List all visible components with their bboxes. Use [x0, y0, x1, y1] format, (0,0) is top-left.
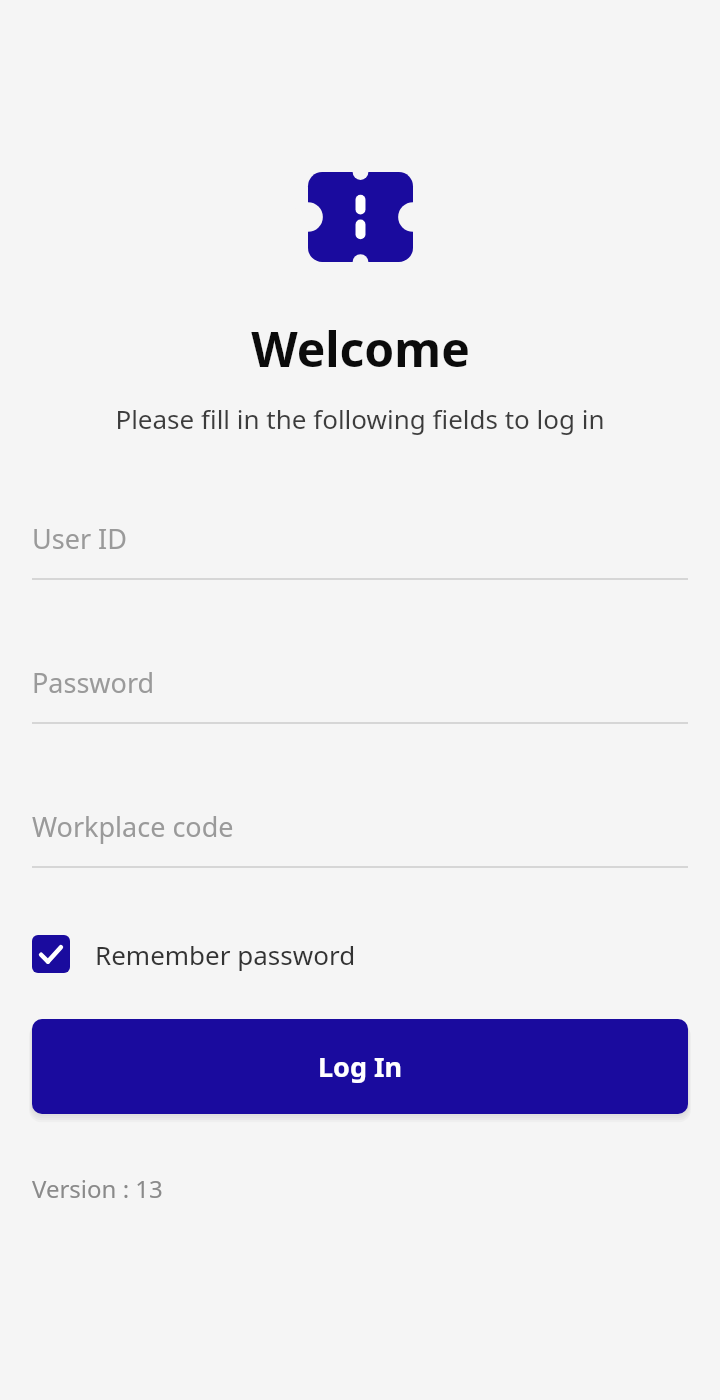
staticText: Remember password [95, 937, 356, 972]
staticText: Log In [318, 1048, 403, 1085]
button[interactable]: Workplace code [32, 808, 688, 868]
staticText: Please fill in the following fields to l… [115, 401, 605, 436]
staticText: User ID [32, 520, 127, 557]
button[interactable]: Password [32, 664, 688, 724]
other: Remember password checkbox, checked [32, 935, 70, 973]
button[interactable]: Remember password checkbox, checked [32, 935, 356, 973]
staticText: Password [32, 664, 155, 701]
button[interactable]: Log In [32, 1019, 688, 1114]
button[interactable]: User ID [32, 520, 688, 580]
staticText: Welcome [251, 316, 470, 381]
staticText: Workplace code [32, 808, 234, 845]
staticText: Version : 13 [32, 1172, 163, 1205]
